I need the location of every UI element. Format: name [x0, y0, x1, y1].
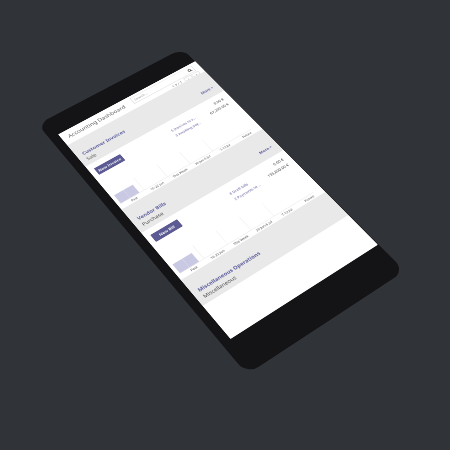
staticText: 16-22 Jun	[209, 248, 226, 260]
staticText: 7-13 Jul	[219, 143, 231, 151]
staticText: Miscellaneous	[201, 274, 238, 300]
button[interactable]: Customer Invoices	[68, 71, 224, 167]
button[interactable]: New Invoice	[94, 154, 126, 175]
staticText: This Week	[232, 234, 250, 246]
staticText: 2 Payments to ...	[233, 182, 262, 201]
staticText: 0.00 €	[271, 157, 285, 166]
staticText: 30 Jun-6 Jul	[255, 219, 273, 232]
other: Search	[187, 68, 193, 72]
staticText: 8 Draft bills	[228, 182, 249, 196]
staticText: Sale	[85, 152, 98, 161]
staticText: 16-22 Jun	[149, 181, 165, 191]
button[interactable]: New Bill	[150, 219, 183, 242]
staticText: 5 Invoices to v...	[170, 116, 197, 133]
staticText: Miscellaneous Operations	[196, 250, 262, 293]
staticText: Past	[130, 195, 139, 202]
staticText: New Bill	[157, 224, 176, 237]
button[interactable]: Next page	[191, 71, 200, 77]
staticText: Future	[303, 194, 315, 203]
staticText: 155,600.00 €	[266, 162, 290, 178]
staticText: Past	[189, 265, 199, 272]
staticText: 30 Jun-6 Jul	[194, 154, 212, 166]
button[interactable]: Search...	[130, 66, 196, 104]
staticText: New Invoice	[97, 156, 122, 172]
staticText: 1-7 / 7	[171, 80, 183, 88]
staticText: Accounting Dashboard	[66, 104, 127, 139]
staticText: Vendor Bills	[135, 200, 168, 222]
staticText: Purchase	[140, 210, 165, 227]
staticText: 7-13 Jul	[280, 207, 293, 217]
staticText: 0.00 €	[212, 97, 225, 105]
button[interactable]: More	[258, 144, 273, 155]
staticText: Search...	[133, 91, 149, 101]
button[interactable]: More	[199, 85, 215, 95]
button[interactable]: Previous page	[183, 75, 193, 81]
button[interactable]: Vendor Bills	[122, 129, 283, 233]
button[interactable]: Miscellaneous Operations	[181, 192, 348, 306]
staticText: Future	[241, 131, 253, 139]
staticText: More	[258, 146, 271, 155]
staticText: 3 Awaiting pay...	[174, 120, 202, 138]
staticText: This Week	[172, 167, 189, 178]
staticText: 67,200.00 €	[208, 102, 230, 115]
staticText: ‹	[186, 76, 190, 80]
staticText: ›	[194, 72, 198, 76]
staticText: Customer Invoices	[81, 129, 127, 156]
staticText: More	[199, 87, 212, 95]
